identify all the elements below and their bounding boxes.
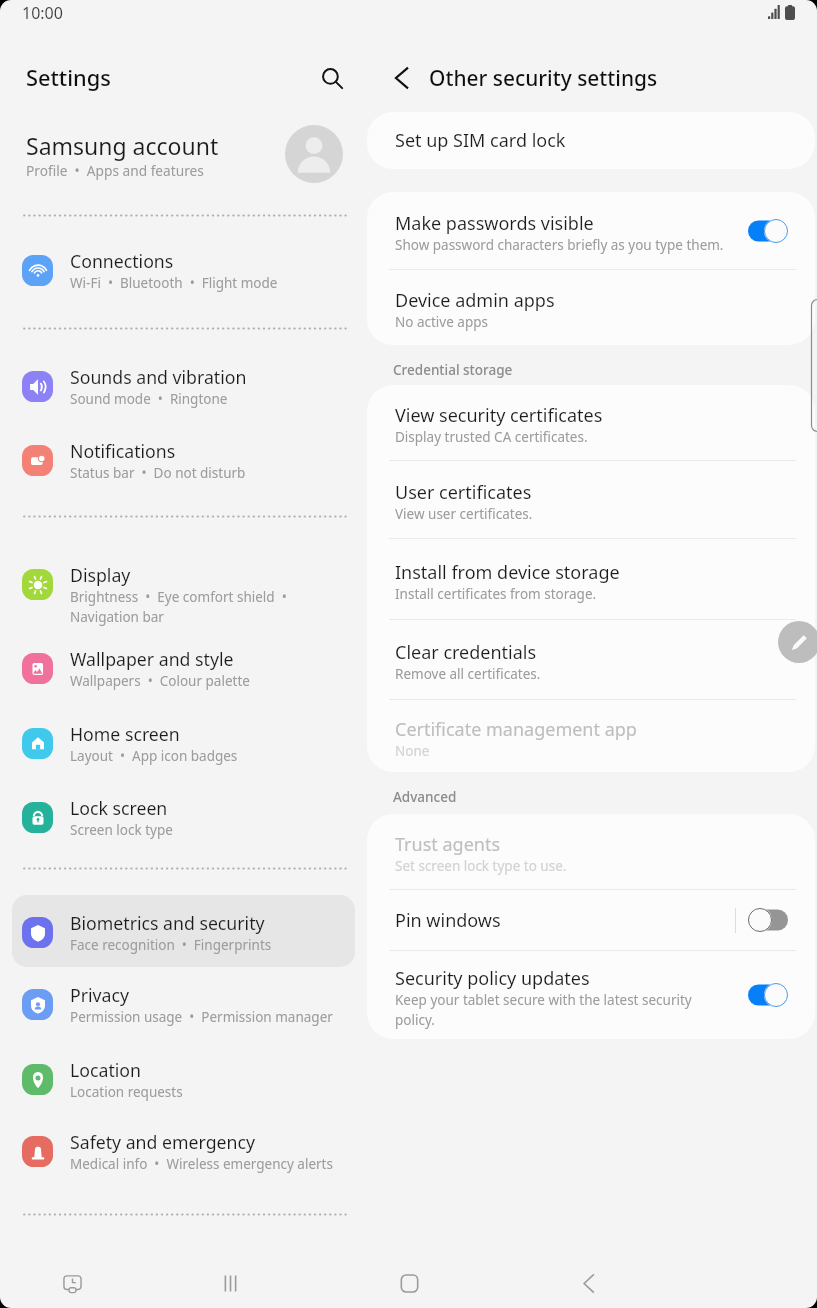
staticText: Layout • App icon badges	[70, 747, 238, 765]
button[interactable]: Certificate management app	[367, 700, 815, 772]
staticText: Biometrics and security	[70, 911, 265, 935]
staticText: Make passwords visible	[395, 211, 594, 236]
staticText: Keep your tablet secure with the latest …	[395, 991, 692, 1029]
button[interactable]: View security certificates	[367, 385, 815, 460]
button[interactable]: Edit	[778, 621, 817, 663]
staticText: Brightness • Eye comfort shield • Naviga…	[70, 588, 287, 626]
staticText: Set up SIM card lock	[395, 128, 788, 153]
staticText: Sound mode • Ringtone	[70, 390, 228, 408]
button[interactable]: Home	[385, 1259, 433, 1307]
staticText: Face recognition • Fingerprints	[70, 936, 272, 954]
staticText: Display trusted CA certificates.	[395, 428, 588, 446]
staticText: Safety and emergency	[70, 1130, 255, 1154]
staticText: Wallpaper and style	[70, 647, 234, 671]
staticText: Screen lock type	[70, 821, 173, 839]
button[interactable]: Install from device storage	[367, 539, 815, 619]
button[interactable]: Back	[384, 61, 418, 95]
button[interactable]: Recent apps	[206, 1259, 254, 1307]
staticText: Samsung account	[26, 130, 219, 161]
button[interactable]: Device admin apps	[367, 270, 815, 345]
staticText: Connections	[70, 249, 174, 273]
staticText: Medical info • Wireless emergency alerts	[70, 1155, 333, 1173]
staticText: Wi-Fi • Bluetooth • Flight mode	[70, 274, 278, 292]
staticText: Install certificates from storage.	[395, 585, 597, 603]
staticText: Sounds and vibration	[70, 365, 247, 389]
staticText: Security policy updates	[395, 966, 590, 991]
staticText: View security certificates	[395, 403, 603, 428]
staticText: Set screen lock type to use.	[395, 857, 567, 875]
button[interactable]: Clear credentials	[367, 620, 815, 699]
staticText: Credential storage	[393, 361, 513, 379]
staticText: No active apps	[395, 313, 488, 331]
staticText: Notifications	[70, 439, 176, 463]
staticText: Show password characters briefly as you …	[395, 236, 724, 254]
button[interactable]: Set up SIM card lock	[367, 112, 815, 169]
staticText: Profile • Apps and features	[26, 161, 204, 180]
staticText: Advanced	[393, 788, 457, 806]
staticText: None	[395, 742, 430, 760]
button[interactable]: Pin windows	[367, 890, 815, 950]
button[interactable]	[12, 895, 355, 967]
staticText: Install from device storage	[395, 560, 620, 585]
staticText: Wallpapers • Colour palette	[70, 672, 250, 690]
staticText: Permission usage • Permission manager	[70, 1008, 333, 1026]
staticText: Pin windows	[395, 908, 735, 933]
staticText: Other security settings	[429, 64, 658, 92]
staticText: Display	[70, 563, 131, 587]
button[interactable]: Search	[310, 56, 354, 100]
staticText: Trust agents	[395, 832, 501, 857]
staticText: Location	[70, 1058, 141, 1082]
staticText: Location requests	[70, 1083, 183, 1101]
staticText: Privacy	[70, 983, 129, 1007]
staticText: Device admin apps	[395, 288, 555, 313]
staticText: Status bar • Do not disturb	[70, 464, 246, 482]
staticText: Settings	[26, 63, 111, 93]
staticText: User certificates	[395, 480, 532, 505]
staticText: Certificate management app	[395, 717, 637, 742]
staticText: Remove all certificates.	[395, 665, 541, 683]
button[interactable]: Samsung account	[0, 118, 367, 190]
button[interactable]: Trust agents	[367, 814, 815, 889]
staticText: View user certificates.	[395, 505, 533, 523]
staticText: 10:00	[22, 2, 63, 24]
staticText: Home screen	[70, 722, 180, 746]
button[interactable]: Back	[564, 1259, 612, 1307]
button[interactable]: User certificates	[367, 461, 815, 538]
button[interactable]: Security policy updates	[367, 951, 815, 1039]
button[interactable]: Make passwords visible	[367, 192, 815, 269]
button[interactable]: Screenshot	[48, 1259, 96, 1307]
staticText: Clear credentials	[395, 640, 537, 665]
staticText: Lock screen	[70, 796, 168, 820]
